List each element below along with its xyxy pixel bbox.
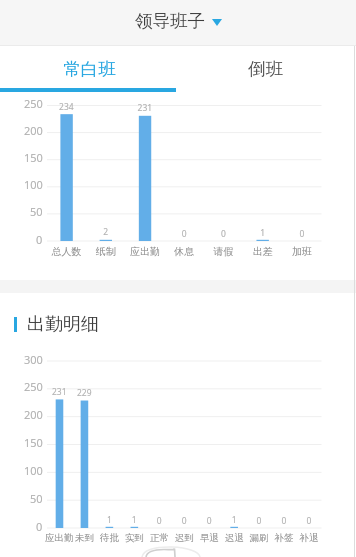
button[interactable]: 倒班 [178, 46, 356, 92]
staticText: 常白班 [63, 58, 116, 80]
staticText: 领导班子 [135, 10, 205, 32]
staticText: 出勤明细 [27, 313, 99, 336]
staticText: 倒班 [248, 58, 283, 80]
button[interactable]: 领导班子 [125, 4, 232, 38]
button[interactable]: 常白班 [0, 46, 178, 92]
